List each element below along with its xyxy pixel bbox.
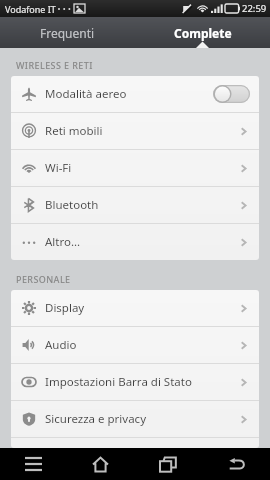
button[interactable]: Back [202,448,270,480]
button[interactable]: Modalità aereo [11,76,259,112]
staticText: Complete [174,25,232,41]
button[interactable]: Home [67,448,134,480]
button[interactable]: Sicurezza e privacy [11,401,259,437]
button[interactable]: Wi-Fi [11,150,259,186]
button[interactable]: Altro... [11,224,259,260]
staticText: Frequenti [40,25,95,41]
staticText: Sicurezza e privacy [45,411,237,427]
button[interactable]: Menu [0,448,67,480]
staticText: 22:59 [242,2,267,15]
staticText: Reti mobili [45,123,237,139]
staticText: PERSONALE [16,273,71,285]
button[interactable]: Recent apps [134,448,202,480]
button[interactable]: Bluetooth [11,187,259,223]
button[interactable]: Complete [135,17,270,48]
other: Modalità aereo [213,85,250,103]
staticText: Wi-Fi [45,160,237,176]
button[interactable]: Reti mobili [11,113,259,149]
button[interactable]: Display [11,290,259,326]
staticText: WIRELESS E RETI [16,59,93,71]
staticText: Modalità aereo [45,86,213,102]
button[interactable]: Audio [11,327,259,363]
staticText: Display [45,300,237,316]
button[interactable]: Frequenti [0,17,135,48]
staticText: Audio [45,337,237,353]
staticText: Impostazioni Barra di Stato [45,374,237,390]
staticText: Vodafone IT [5,3,56,15]
staticText: Altro... [45,234,237,250]
button[interactable]: Impostazioni Barra di Stato [11,364,259,400]
staticText: Bluetooth [45,197,237,213]
